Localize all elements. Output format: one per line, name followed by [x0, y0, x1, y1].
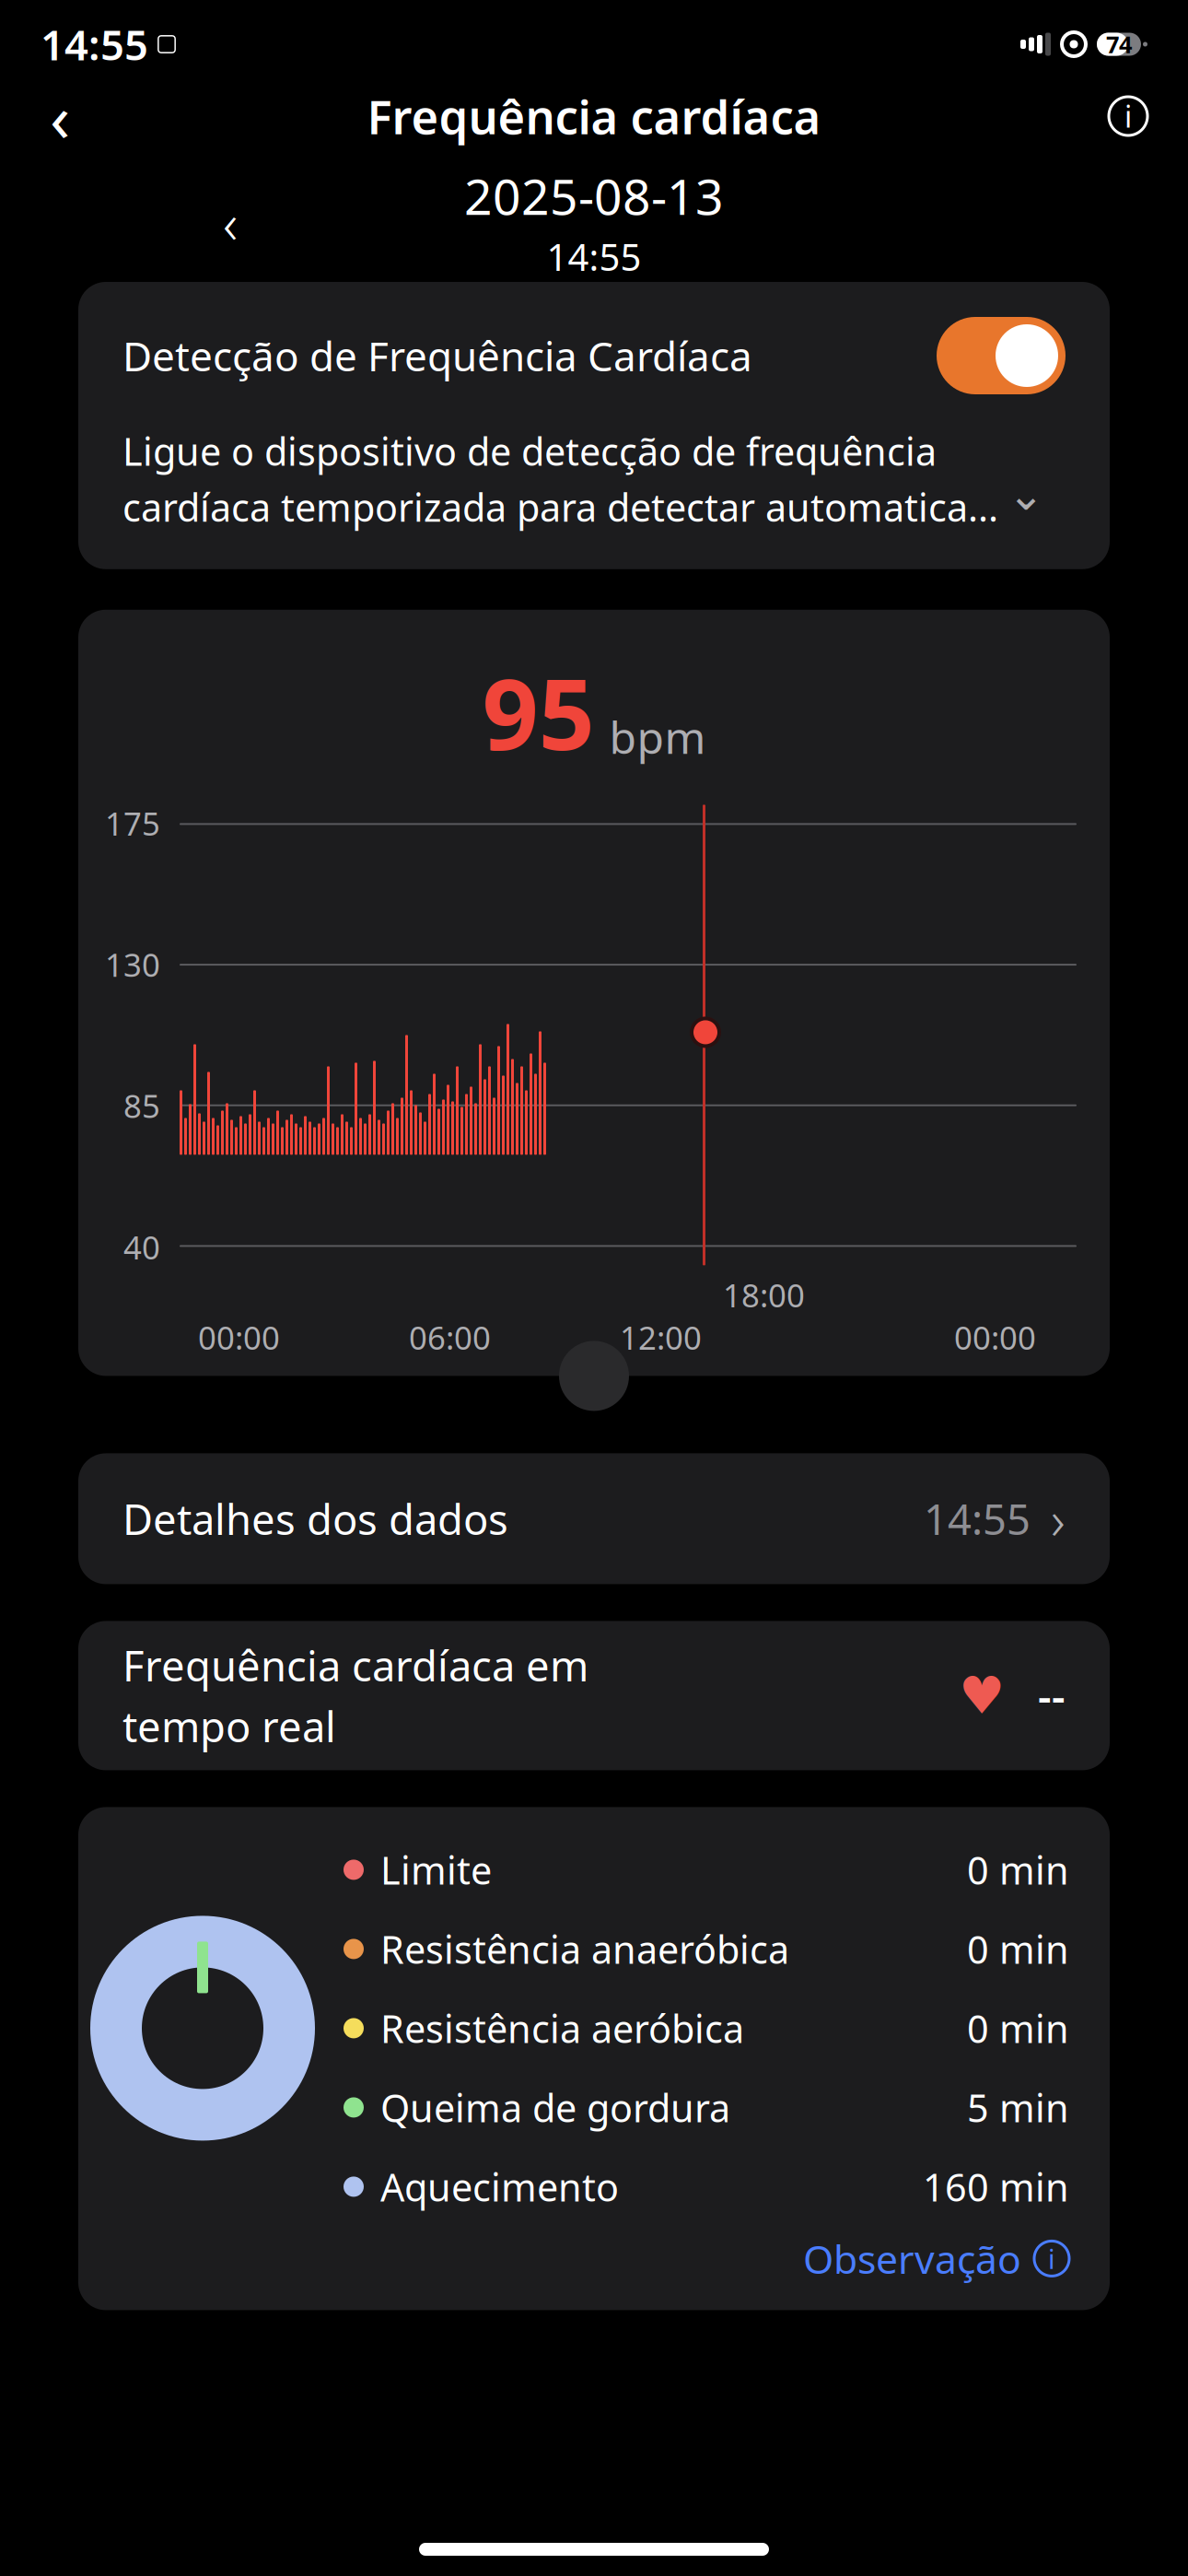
staticText: 95: [482, 647, 594, 777]
staticText: Frequência cardíaca em: [122, 1637, 588, 1693]
staticText: Detecção de Frequência Cardíaca: [122, 329, 752, 383]
staticText: --: [1038, 1668, 1066, 1723]
staticText: Limite: [380, 1844, 492, 1895]
staticText: 40: [123, 1226, 160, 1268]
staticText: 0 min: [967, 1924, 1069, 1974]
staticText: 14:55: [924, 1491, 1031, 1546]
staticText: ‹: [223, 185, 238, 260]
staticText: Queima de gordura: [380, 2082, 730, 2133]
staticText: 85: [123, 1084, 160, 1127]
staticText: i: [1048, 2241, 1055, 2276]
button[interactable]: Observação: [78, 2222, 1110, 2295]
staticText: tempo real: [122, 1698, 336, 1754]
button[interactable]: Detecção de Frequência Cardíaca: [78, 282, 1110, 569]
button[interactable]: Information: [1096, 84, 1160, 148]
staticText: ›: [1051, 1483, 1066, 1555]
staticText: 0 min: [967, 2003, 1069, 2054]
staticText: 00:00: [954, 1316, 1036, 1358]
staticText: 160 min: [923, 2161, 1069, 2212]
staticText: ♥: [959, 1666, 1005, 1725]
staticText: 5 min: [967, 2082, 1069, 2133]
staticText: bpm: [609, 707, 706, 766]
staticText: 130: [105, 943, 160, 986]
staticText: ⌄: [1007, 469, 1044, 519]
staticText: ‹: [50, 72, 70, 160]
staticText: 06:00: [409, 1316, 491, 1358]
staticText: Ligue o dispositivo de detecção de frequ…: [122, 426, 937, 476]
staticText: Resistência aeróbica: [380, 2003, 744, 2054]
staticText: 00:00: [198, 1316, 280, 1358]
button[interactable]: Frequência cardíaca em: [78, 1621, 1110, 1770]
button[interactable]: Previous day: [201, 193, 260, 252]
staticText: 18:00: [723, 1274, 805, 1316]
staticText: Observação: [803, 2232, 1021, 2285]
staticText: 74: [1106, 29, 1132, 60]
staticText: Aquecimento: [380, 2161, 619, 2212]
staticText: Frequência cardíaca: [367, 85, 821, 147]
staticText: cardíaca temporizada para detectar autom…: [122, 482, 998, 532]
staticText: 175: [105, 802, 160, 844]
staticText: 0 min: [967, 1844, 1069, 1895]
button[interactable]: Detalhes dos dados: [78, 1453, 1110, 1584]
staticText: 14:55: [547, 232, 641, 281]
staticText: i: [1124, 97, 1132, 136]
staticText: Resistência anaeróbica: [380, 1924, 789, 1974]
staticText: 14:55: [41, 16, 148, 72]
staticText: 12:00: [620, 1316, 702, 1358]
staticText: 2025-08-13: [464, 163, 724, 228]
button[interactable]: Back: [28, 84, 92, 148]
staticText: Detalhes dos dados: [122, 1491, 508, 1546]
